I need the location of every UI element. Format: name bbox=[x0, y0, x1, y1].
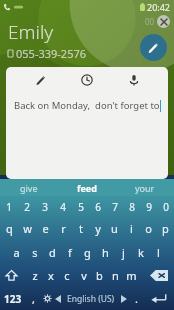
staticText: give bbox=[20, 182, 38, 194]
staticText: r bbox=[61, 221, 66, 236]
staticText: y bbox=[95, 221, 101, 236]
button[interactable]: z bbox=[27, 264, 42, 286]
staticText: 20:42 bbox=[147, 1, 171, 13]
button[interactable]: w bbox=[18, 217, 36, 240]
staticText: z bbox=[32, 268, 38, 283]
staticText: w bbox=[23, 221, 32, 236]
staticText: l bbox=[157, 245, 160, 260]
button[interactable]: g bbox=[80, 241, 95, 263]
staticText: 055-339-2576 bbox=[16, 46, 87, 61]
button[interactable]: a bbox=[9, 241, 24, 263]
staticText: 1 bbox=[6, 200, 12, 214]
staticText: Emily bbox=[8, 19, 54, 45]
staticText: , bbox=[32, 291, 35, 306]
button[interactable]: 1 bbox=[0, 196, 18, 217]
button[interactable]: k bbox=[133, 241, 148, 263]
staticText: English (US) bbox=[67, 293, 115, 305]
staticText: 9 bbox=[146, 200, 152, 214]
staticText: t bbox=[79, 221, 83, 236]
button[interactable]: o bbox=[140, 217, 157, 240]
button[interactable]: Settings bbox=[40, 287, 54, 310]
staticText: 2 bbox=[24, 200, 30, 214]
button[interactable]: h bbox=[98, 241, 113, 263]
button[interactable]: q bbox=[0, 217, 18, 240]
button[interactable]: t bbox=[72, 217, 89, 240]
button[interactable]: Schedule bbox=[75, 68, 99, 92]
button[interactable]: l bbox=[151, 241, 166, 263]
staticText: q bbox=[6, 221, 13, 236]
staticText: a bbox=[13, 245, 20, 260]
staticText: o bbox=[145, 221, 152, 236]
button[interactable]: 8 bbox=[123, 196, 140, 217]
staticText: e bbox=[42, 221, 49, 236]
staticText: i bbox=[130, 221, 133, 236]
button[interactable]: y bbox=[89, 217, 106, 240]
button[interactable]: f bbox=[62, 241, 77, 263]
staticText: h bbox=[102, 245, 109, 260]
button[interactable]: Space bbox=[54, 287, 128, 310]
staticText: Back on Monday, don't forget to bbox=[14, 99, 160, 112]
button[interactable]: s bbox=[27, 241, 42, 263]
staticText: your bbox=[135, 182, 155, 194]
button[interactable]: 123 bbox=[0, 287, 26, 310]
staticText: d bbox=[49, 245, 56, 260]
staticText: 7 bbox=[112, 200, 118, 214]
button[interactable]: i bbox=[123, 217, 140, 240]
button[interactable]: j bbox=[116, 241, 131, 263]
button[interactable]: . bbox=[128, 287, 144, 310]
staticText: u bbox=[111, 221, 118, 236]
staticText: s bbox=[32, 245, 38, 260]
staticText: 4 bbox=[60, 200, 66, 214]
button[interactable]: feed bbox=[58, 179, 116, 196]
staticText: . bbox=[135, 291, 138, 306]
staticText: k bbox=[138, 245, 144, 260]
staticText: 3 bbox=[42, 200, 48, 214]
button[interactable]: d bbox=[45, 241, 60, 263]
button[interactable]: , bbox=[26, 287, 40, 310]
button[interactable]: your bbox=[116, 179, 174, 196]
staticText: m bbox=[126, 268, 137, 283]
button[interactable]: Voice input bbox=[122, 68, 146, 92]
button[interactable]: 7 bbox=[106, 196, 123, 217]
button[interactable]: 5 bbox=[72, 196, 89, 217]
button[interactable]: Draw bbox=[29, 68, 53, 92]
button[interactable]: 9 bbox=[140, 196, 157, 217]
button[interactable]: Enter bbox=[144, 287, 174, 310]
staticText: feed bbox=[77, 182, 97, 194]
staticText: n bbox=[112, 268, 119, 283]
button[interactable]: 0 bbox=[157, 196, 174, 217]
staticText: b bbox=[96, 268, 103, 283]
button[interactable]: r bbox=[54, 217, 72, 240]
button[interactable]: Shift bbox=[0, 263, 22, 287]
button[interactable]: e bbox=[36, 217, 54, 240]
staticText: v bbox=[81, 268, 87, 283]
button[interactable]: 4 bbox=[54, 196, 72, 217]
staticText: 123 bbox=[4, 292, 22, 306]
button[interactable]: c bbox=[59, 264, 74, 286]
staticText: 0 bbox=[163, 200, 169, 214]
button[interactable]: p bbox=[157, 217, 174, 240]
staticText: 8 bbox=[129, 200, 135, 214]
button[interactable]: Close bbox=[157, 15, 170, 28]
button[interactable]: x bbox=[43, 264, 58, 286]
staticText: c bbox=[64, 268, 70, 283]
button[interactable]: u bbox=[106, 217, 123, 240]
button[interactable]: b bbox=[92, 264, 107, 286]
button[interactable]: Backspace bbox=[144, 263, 174, 287]
button[interactable]: m bbox=[124, 264, 139, 286]
button[interactable]: give bbox=[0, 179, 58, 196]
button[interactable]: 3 bbox=[36, 196, 54, 217]
button[interactable]: v bbox=[76, 264, 91, 286]
staticText: 5 bbox=[78, 200, 84, 214]
staticText: x bbox=[48, 268, 54, 283]
staticText: g bbox=[84, 245, 91, 260]
staticText: 6 bbox=[95, 200, 101, 214]
staticText: 00 bbox=[145, 16, 155, 27]
button[interactable]: 2 bbox=[18, 196, 36, 217]
button[interactable]: Edit bbox=[140, 34, 167, 61]
button[interactable]: 6 bbox=[89, 196, 106, 217]
staticText: j bbox=[122, 245, 125, 260]
staticText: p bbox=[162, 221, 169, 236]
staticText: f bbox=[68, 245, 72, 260]
button[interactable]: n bbox=[108, 264, 123, 286]
